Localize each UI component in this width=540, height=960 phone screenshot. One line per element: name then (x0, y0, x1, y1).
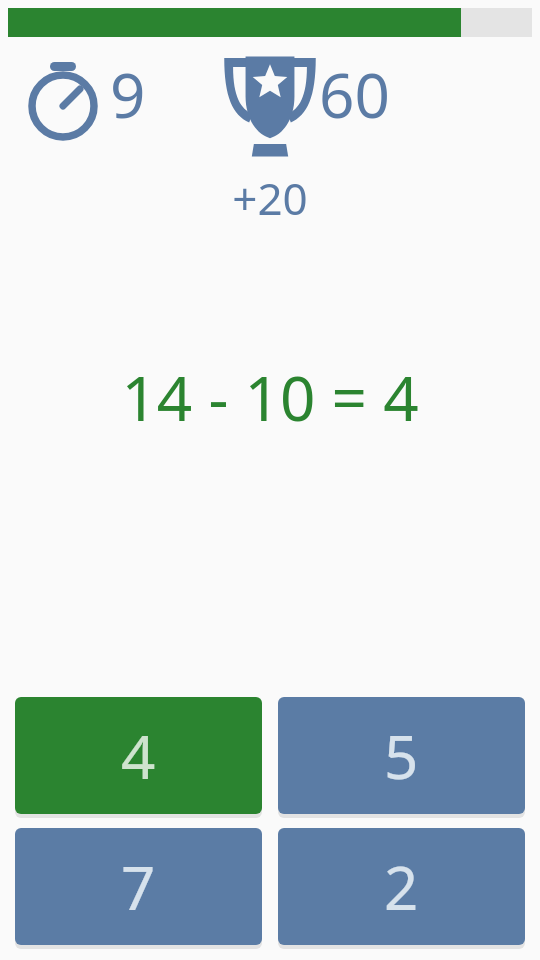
button[interactable]: 4 (15, 697, 262, 814)
other: Remaining time (22, 56, 104, 156)
staticText: 2 (384, 846, 419, 928)
staticText: 4 (121, 715, 156, 797)
other: Score (218, 55, 322, 159)
button[interactable]: 2 (278, 828, 525, 945)
button[interactable]: 7 (15, 828, 262, 945)
staticText: +20 (0, 168, 540, 228)
staticText: 9 (110, 52, 146, 136)
staticText: 14 - 10 = 4 (0, 355, 540, 439)
staticText: 5 (384, 715, 419, 797)
button[interactable]: 5 (278, 697, 525, 814)
staticText: 60 (319, 52, 390, 136)
staticText: 7 (121, 846, 156, 928)
